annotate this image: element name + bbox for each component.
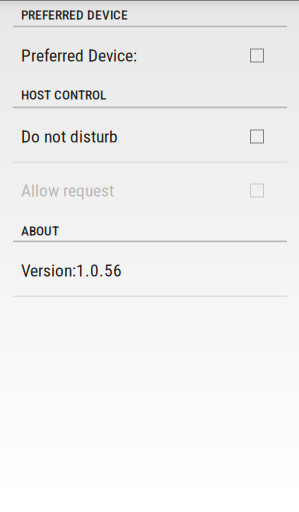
staticText: Preferred Device:: [21, 45, 137, 66]
button[interactable]: Allow request: [0, 163, 299, 218]
staticText: Allow request: [21, 180, 114, 201]
button[interactable]: Version:1.0.56: [0, 243, 299, 298]
staticText: HOST CONTROL: [21, 87, 106, 103]
staticText: Do not disturb: [21, 126, 118, 147]
staticText: ABOUT: [21, 223, 59, 239]
button[interactable]: Do not disturb: [0, 109, 299, 164]
staticText: PREFERRED DEVICE: [21, 7, 128, 23]
button[interactable]: Preferred Device:: [0, 28, 299, 83]
staticText: Version:1.0.56: [21, 260, 122, 281]
